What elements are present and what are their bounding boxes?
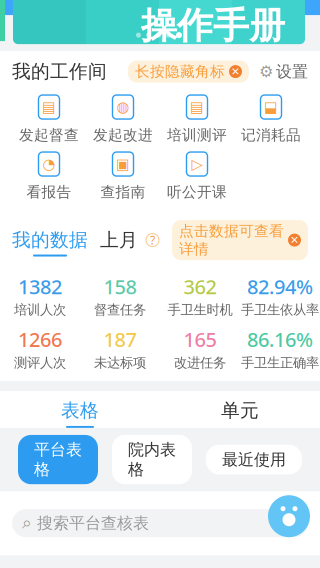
staticText: 平台表格	[34, 440, 82, 479]
staticText: 上月	[100, 229, 138, 251]
staticText: ⚙	[259, 62, 273, 81]
button[interactable]: ◔	[12, 150, 86, 201]
staticText: ▤	[190, 99, 204, 115]
staticText: ▤	[42, 99, 56, 115]
staticText: 165	[183, 326, 216, 353]
button[interactable]: ⚙	[249, 62, 308, 81]
staticText: 测评人次	[14, 355, 66, 371]
staticText: 82.94%	[247, 273, 313, 300]
staticText: 手卫生时机	[167, 302, 232, 318]
button[interactable]: 平台表格	[18, 435, 98, 484]
staticText: 1382	[18, 273, 62, 300]
button[interactable]: ▣	[86, 150, 160, 201]
button[interactable]: ▤	[160, 93, 234, 144]
button[interactable]: ⬓	[234, 93, 308, 144]
button[interactable]: 165	[160, 326, 240, 371]
staticText: ⬓	[264, 99, 278, 115]
button[interactable]: 1266	[0, 326, 80, 371]
button[interactable]: 82.94%	[240, 273, 320, 318]
staticText: 记消耗品	[241, 126, 301, 144]
button[interactable]: 点击数据可查看详情	[172, 220, 308, 265]
button[interactable]: 187	[80, 326, 160, 371]
button[interactable]: 1382	[0, 273, 80, 318]
staticText: ✕	[290, 234, 299, 246]
button[interactable]: ⌕	[0, 502, 320, 544]
staticText: 听公开课	[167, 183, 227, 201]
staticText: 最近使用	[222, 450, 286, 469]
staticText: 362	[183, 273, 216, 300]
staticText: ◔	[42, 156, 55, 172]
button[interactable]: 长按隐藏角标	[128, 61, 249, 83]
button[interactable]: 最近使用	[206, 445, 302, 474]
staticText: 感控工作间	[61, 0, 256, 4]
staticText: 培训测评	[167, 126, 227, 144]
button[interactable]: 感控工作间	[0, 0, 320, 44]
staticText: 操作手册	[141, 4, 285, 48]
staticText: 我的工作间	[12, 60, 107, 83]
staticText: ✕	[231, 65, 240, 78]
button[interactable]: ?	[138, 234, 159, 252]
staticText: 查指南	[100, 183, 145, 201]
staticText: 86.16%	[247, 326, 313, 353]
button[interactable]: 86.16%	[240, 326, 320, 371]
staticText: 搜索平台查核表	[37, 513, 149, 533]
staticText: ◍	[116, 99, 129, 115]
staticText: 点击数据可查看详情	[179, 222, 284, 258]
button[interactable]: ▤	[12, 93, 86, 144]
staticText: 培训人次	[14, 302, 66, 318]
staticText: 看报告	[26, 183, 71, 201]
button[interactable]: 表格	[0, 399, 160, 428]
button[interactable]: 362	[160, 273, 240, 318]
staticText: 院内表格	[128, 440, 176, 479]
staticText: 187	[103, 326, 136, 353]
staticText: 长按隐藏角标	[135, 63, 225, 81]
staticText: 手卫生正确率	[241, 355, 319, 371]
staticText: 督查任务	[94, 302, 146, 318]
staticText: 改进任务	[174, 355, 226, 371]
staticText: 发起督查	[19, 126, 79, 144]
staticText: ▣	[116, 156, 130, 172]
staticText: 设置	[276, 62, 308, 81]
staticText: ?	[150, 232, 155, 248]
button[interactable]: 上月	[88, 229, 138, 256]
staticText: 158	[103, 273, 136, 300]
staticText: 发起改进	[93, 126, 153, 144]
button[interactable]: ◍	[86, 93, 160, 144]
button[interactable]: ▷	[160, 150, 234, 201]
staticText: ▷	[191, 156, 202, 172]
staticText: 未达标项	[94, 355, 146, 371]
staticText: 手卫生依从率	[241, 302, 319, 318]
staticText: 1266	[18, 326, 62, 353]
button[interactable]: 我的数据	[12, 229, 88, 256]
staticText: ⌕	[22, 515, 32, 532]
button[interactable]: 158	[80, 273, 160, 318]
button[interactable]: 智能助手	[264, 491, 314, 541]
staticText: 表格	[61, 399, 99, 422]
staticText: 我的数据	[12, 229, 88, 251]
button[interactable]: 院内表格	[112, 435, 192, 484]
button[interactable]: 单元	[160, 399, 320, 428]
staticText: 单元	[221, 399, 259, 422]
